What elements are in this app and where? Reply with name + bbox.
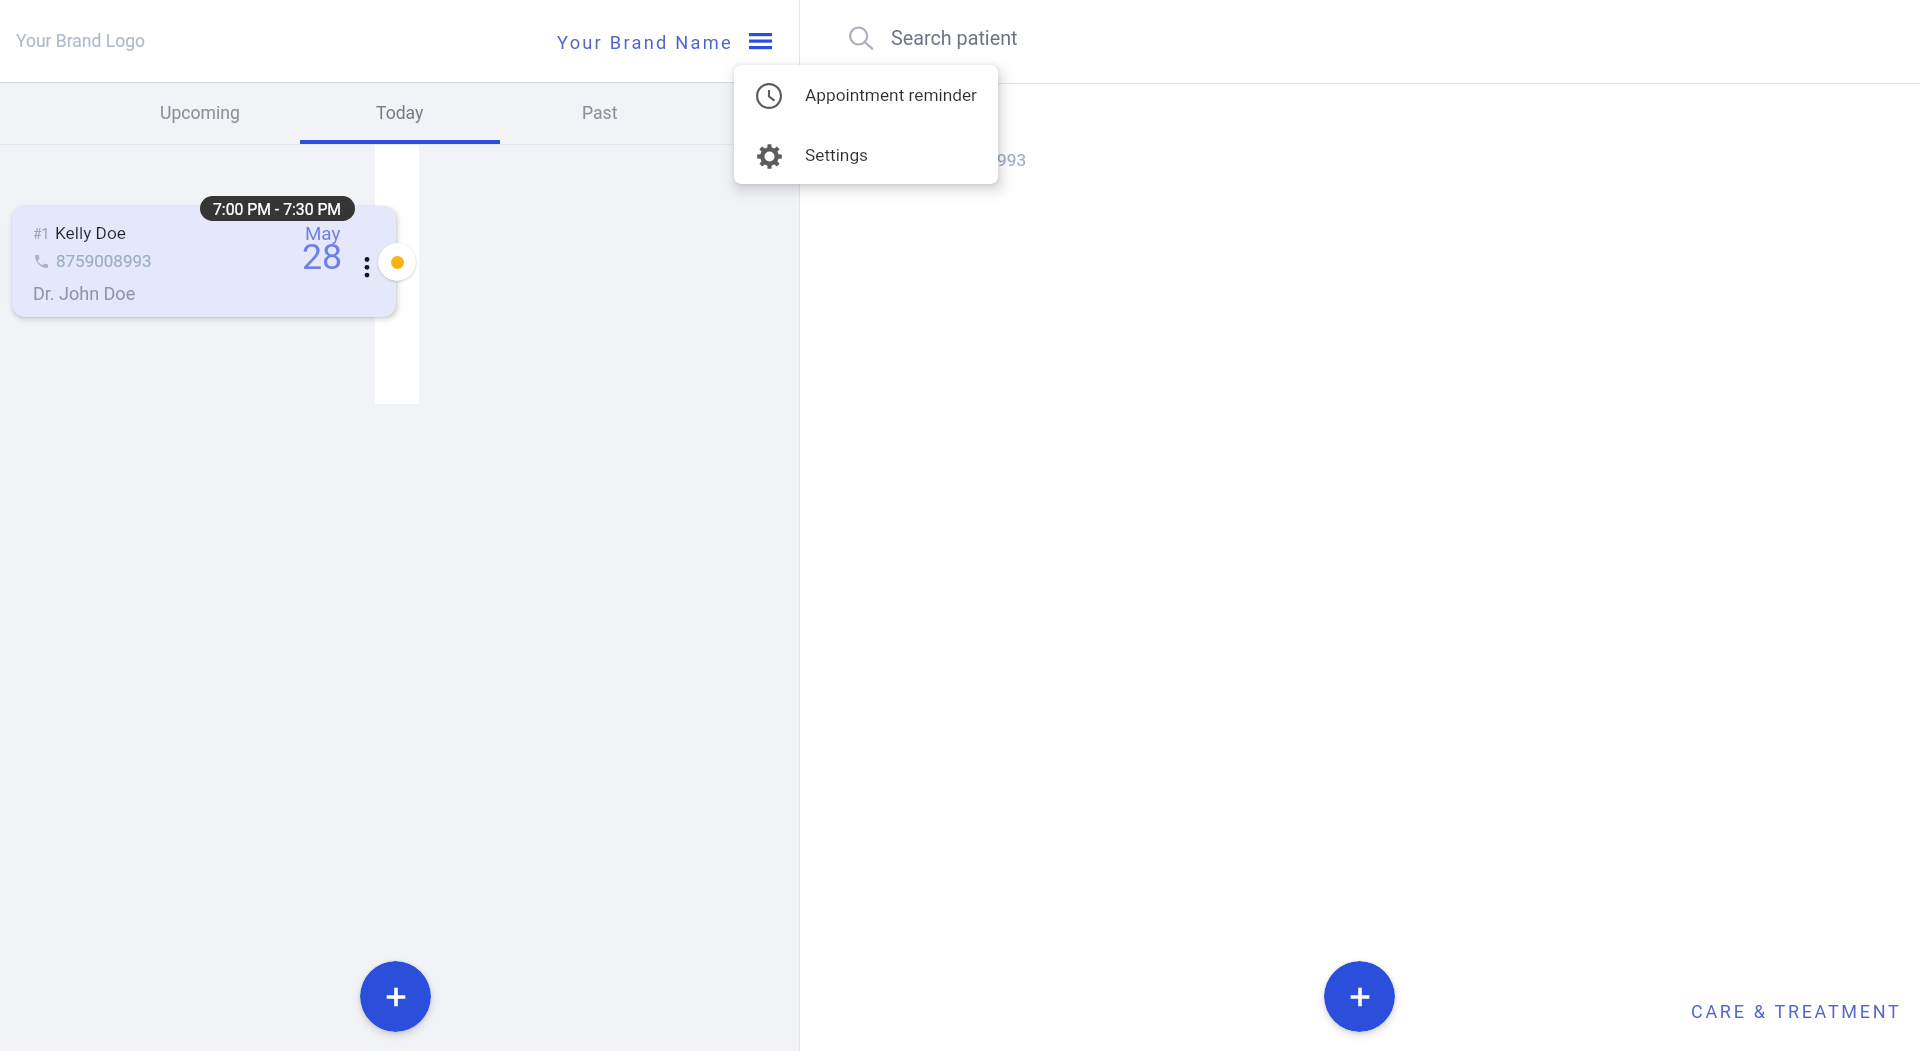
button[interactable]: Today [300, 83, 500, 145]
staticText: Appointment reminder [805, 85, 977, 105]
button[interactable]: Upcoming [100, 83, 300, 145]
staticText: Upcoming [160, 103, 240, 124]
staticText: 993 [997, 150, 1027, 170]
button[interactable]: Status [378, 243, 416, 281]
button[interactable]: Settings [734, 125, 998, 184]
button[interactable]: #1 [12, 206, 396, 317]
staticText: 8759008993 [56, 251, 152, 271]
button[interactable]: Appointment reminder [734, 65, 998, 125]
staticText: CARE & TREATMENT [1691, 1001, 1902, 1022]
staticText: #1 [33, 226, 50, 242]
button[interactable]: Menu [743, 25, 777, 59]
staticText: Dr. John Doe [33, 283, 136, 304]
button[interactable]: Add appointment [360, 961, 431, 1032]
staticText: Your Brand Name [557, 32, 733, 53]
button[interactable]: Search patient [844, 21, 1018, 55]
staticText: Search patient [891, 27, 1018, 50]
staticText: 7:00 PM - 7:30 PM [213, 200, 342, 218]
button[interactable]: Past [500, 83, 700, 145]
staticText: Kelly Doe [55, 223, 126, 243]
staticText: 28 [302, 236, 343, 278]
staticText: Today [376, 103, 424, 124]
button[interactable]: More options [354, 254, 380, 280]
button[interactable]: Add patient [1324, 961, 1395, 1032]
staticText: Your Brand Logo [16, 31, 145, 52]
staticText: Settings [805, 145, 868, 165]
staticText: Past [582, 103, 618, 124]
staticText: May [305, 223, 341, 245]
